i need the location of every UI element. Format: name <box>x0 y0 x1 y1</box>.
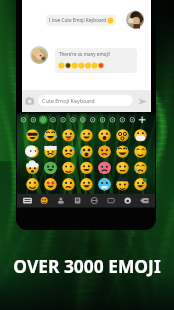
staticText: I love Cute Emoji Keyboard <box>49 17 107 23</box>
staticText: Cute Emoji Keyboard <box>42 97 95 104</box>
staticText: There're so many emoji! <box>59 51 110 57</box>
staticText: OVER 3000 EMOJI <box>13 254 161 278</box>
